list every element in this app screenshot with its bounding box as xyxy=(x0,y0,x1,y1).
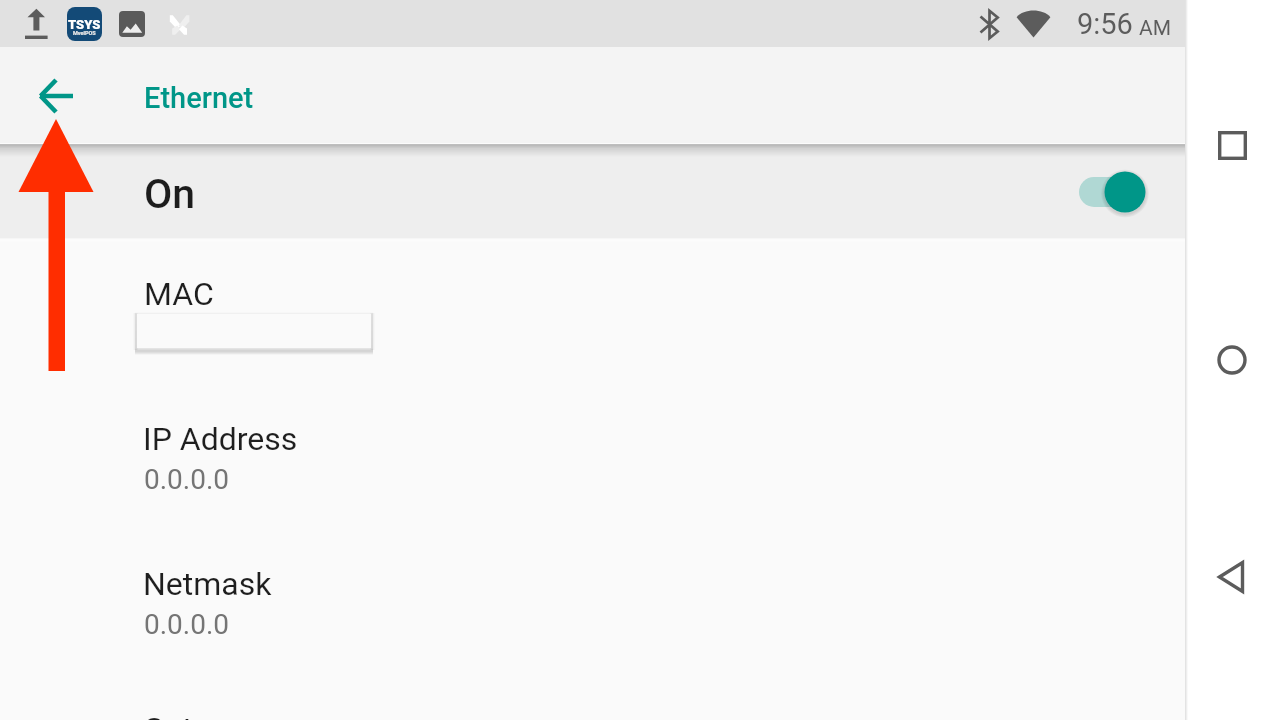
staticText: IP Address xyxy=(143,420,298,458)
button[interactable]: Netmask xyxy=(0,564,1185,709)
staticText: Gateway xyxy=(143,710,266,720)
button[interactable]: On xyxy=(0,144,1185,239)
staticText: 0.0.0.0 xyxy=(144,463,230,496)
button[interactable]: Back xyxy=(1206,551,1258,603)
button[interactable]: Ethernet on/off toggle xyxy=(1077,169,1145,215)
button[interactable]: IP Address xyxy=(0,419,1185,564)
staticText: On xyxy=(144,170,196,218)
button[interactable]: Navigate back xyxy=(16,55,88,127)
staticText: AM xyxy=(1139,16,1172,41)
staticText: TSYS xyxy=(68,17,101,32)
staticText: MvelPOS xyxy=(73,30,96,36)
staticText: MAC xyxy=(144,275,214,313)
button[interactable]: Recent apps xyxy=(1206,119,1258,171)
button[interactable]: Gateway xyxy=(0,709,1185,720)
button[interactable]: MAC xyxy=(0,239,1185,374)
staticText: Ethernet xyxy=(144,81,254,115)
staticText: Netmask xyxy=(143,565,272,603)
staticText: 0.0.0.0 xyxy=(144,608,230,641)
staticText: 9:56 xyxy=(1077,7,1133,41)
button[interactable]: Home xyxy=(1206,334,1258,386)
